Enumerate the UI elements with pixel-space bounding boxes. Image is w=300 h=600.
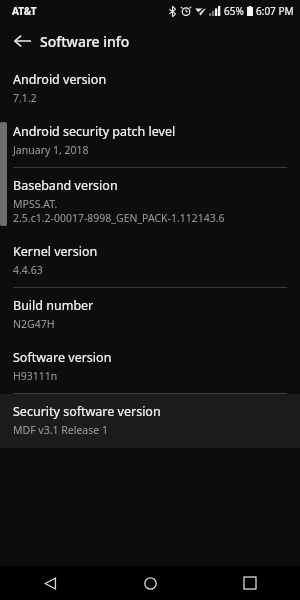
staticText: Baseband version	[13, 177, 118, 194]
staticText: Android security patch level	[13, 123, 176, 140]
staticText: Android version	[13, 71, 107, 88]
staticText: 65%	[224, 4, 244, 18]
button[interactable]: Back	[6, 25, 38, 57]
button[interactable]: Software version	[0, 343, 300, 393]
button[interactable]: Recents	[200, 566, 300, 600]
staticText: Software info	[40, 32, 130, 51]
staticText: Software version	[13, 349, 112, 366]
button[interactable]: Home	[100, 566, 200, 600]
staticText: Build number	[13, 297, 94, 314]
staticText: H93111n	[13, 369, 58, 383]
staticText: 6:07 PM	[256, 4, 294, 18]
staticText: N2G47H	[13, 317, 55, 331]
button[interactable]: Security software version	[0, 394, 300, 448]
staticText: MPSS.AT.	[13, 197, 58, 211]
button[interactable]: Baseband version	[0, 168, 300, 237]
staticText: 4.4.63	[13, 263, 43, 277]
button[interactable]: Build number	[0, 288, 300, 343]
staticText: January 1, 2018	[13, 143, 89, 157]
button[interactable]: Android security patch level	[0, 117, 300, 167]
button[interactable]: Kernel version	[0, 237, 300, 287]
button[interactable]: Back	[0, 566, 100, 600]
staticText: Kernel version	[13, 243, 98, 260]
staticText: 7.1.2	[13, 91, 37, 105]
staticText: 2.5.c1.2-00017-8998_GEN_PACK-1.112143.6	[13, 211, 225, 225]
staticText: AT&T	[12, 4, 37, 18]
staticText: Security software version	[13, 403, 161, 420]
staticText: MDF v3.1 Release 1	[13, 423, 108, 437]
button[interactable]: Android version	[0, 63, 300, 117]
